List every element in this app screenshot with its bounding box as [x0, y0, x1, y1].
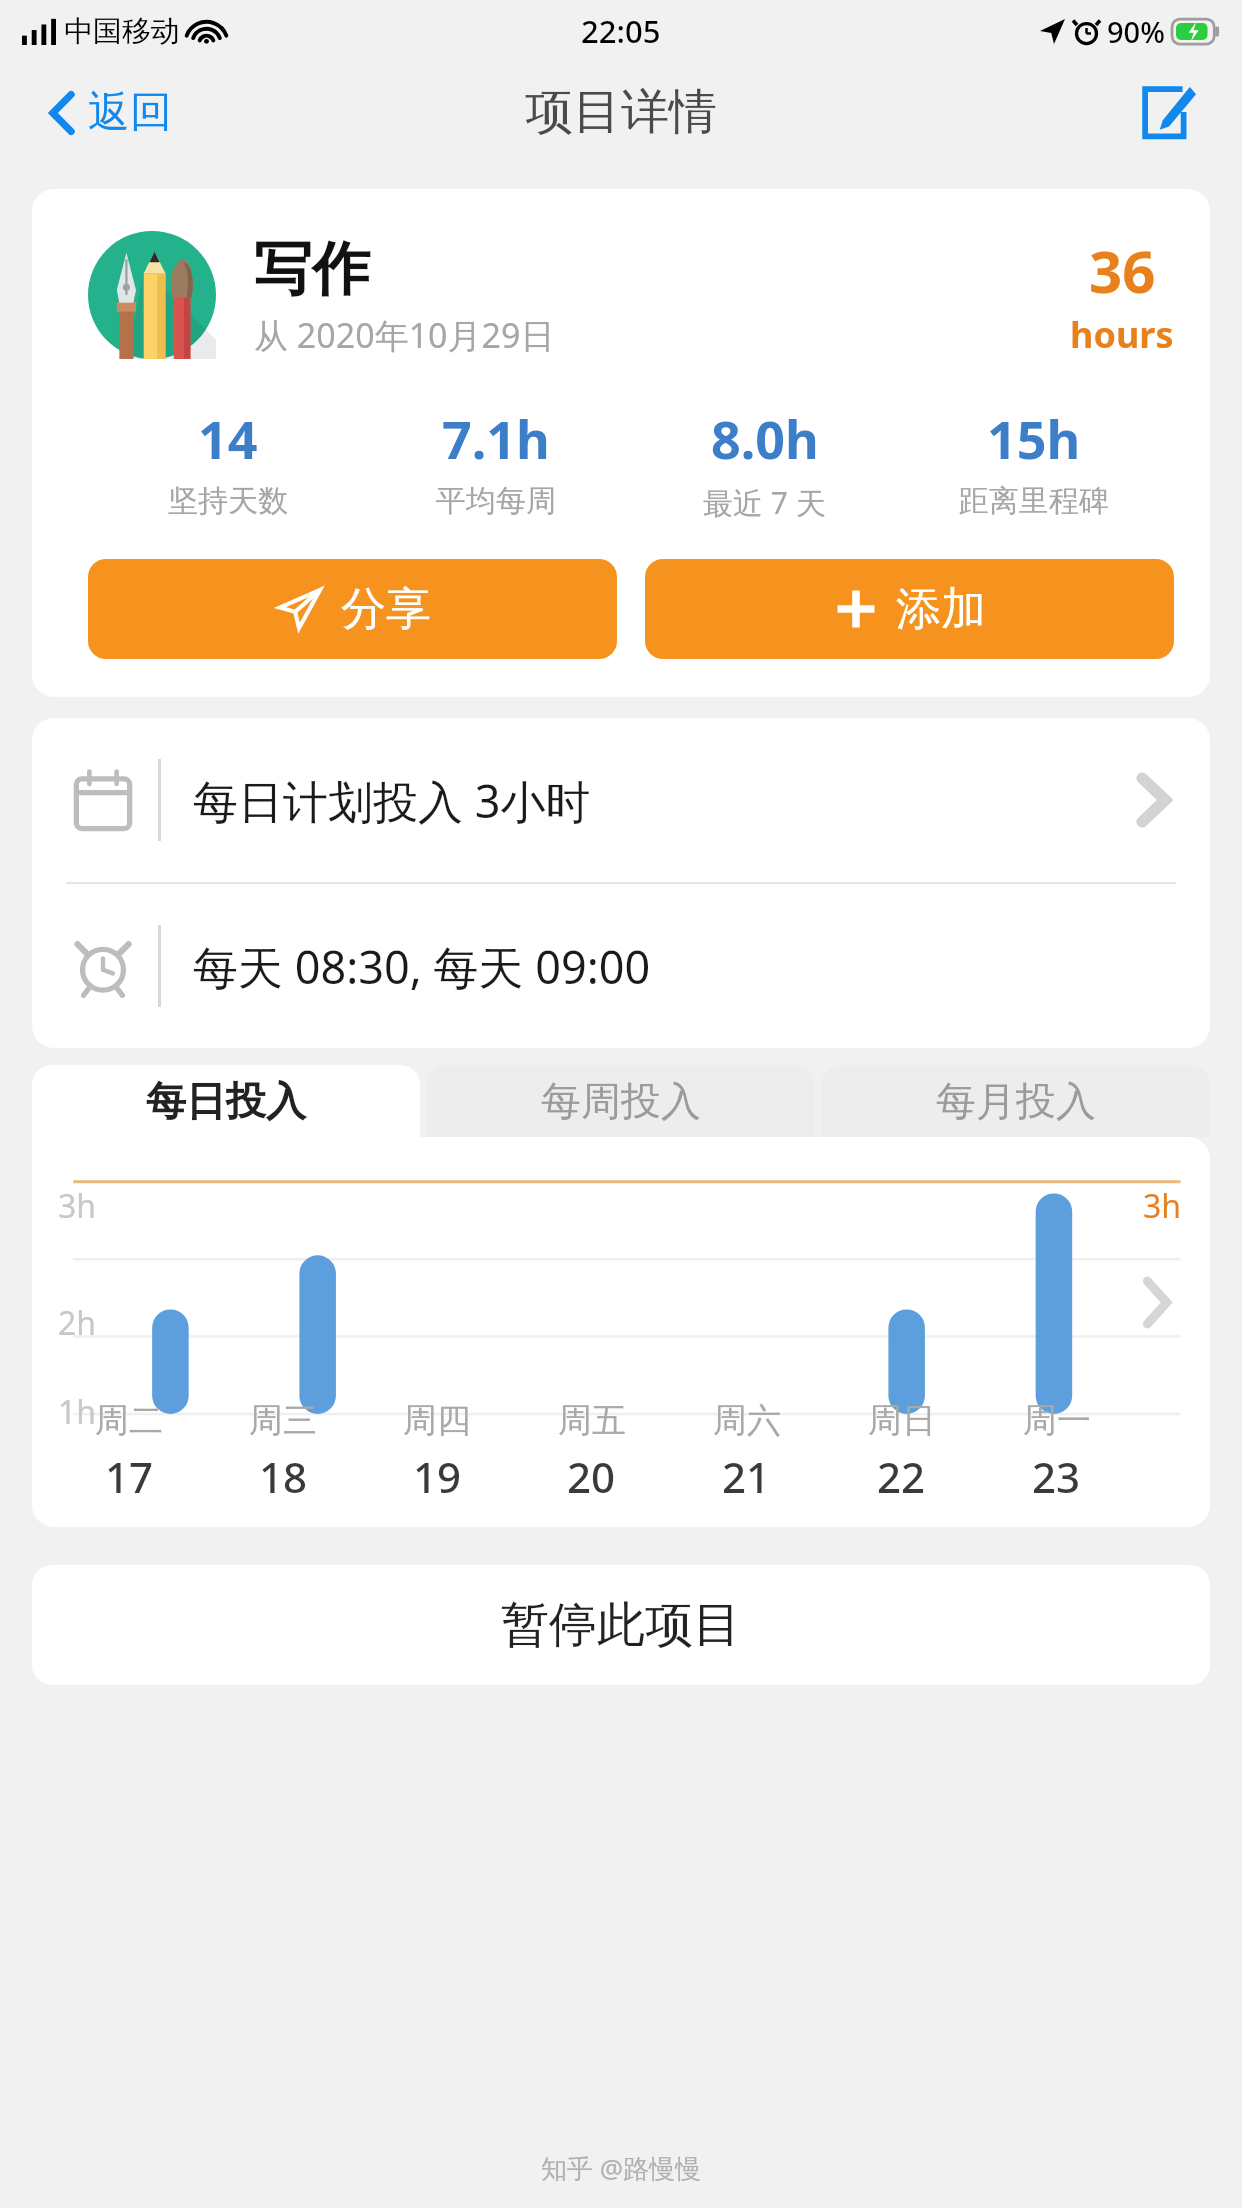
staticText: 7.1h	[442, 403, 550, 474]
button[interactable]: 添加	[645, 559, 1174, 659]
staticText: 距离里程碑	[959, 482, 1109, 520]
staticText: 周一	[1023, 1399, 1091, 1442]
button[interactable]: 每月投入	[821, 1065, 1210, 1137]
staticText: 90%	[1107, 12, 1165, 51]
staticText: 20	[567, 1448, 616, 1505]
staticText: 暂停此项目	[501, 1595, 741, 1655]
staticText: 中国移动	[64, 13, 180, 50]
button[interactable]: 每周投入	[426, 1065, 815, 1137]
staticText: 项目详情	[525, 82, 717, 142]
button[interactable]: Edit	[1118, 74, 1242, 150]
staticText: 1h	[58, 1390, 97, 1434]
staticText: 周日	[868, 1399, 936, 1442]
staticText: 写作	[254, 233, 370, 306]
staticText: 周五	[558, 1399, 626, 1442]
button[interactable]: 每日投入	[32, 1065, 420, 1137]
staticText: 22:05	[581, 10, 661, 52]
staticText: 平均每周	[436, 482, 556, 520]
button[interactable]: 暂停此项目	[32, 1565, 1210, 1685]
staticText: 每日投入	[146, 1076, 306, 1126]
staticText: hours	[1070, 310, 1174, 359]
staticText: 3h	[1143, 1184, 1182, 1228]
staticText: 返回	[88, 86, 172, 139]
button[interactable]: 分享	[88, 559, 617, 659]
staticText: 周二	[95, 1399, 163, 1442]
staticText: 14	[198, 403, 258, 474]
staticText: 23	[1032, 1448, 1081, 1505]
staticText: 2h	[58, 1301, 97, 1345]
staticText: 36	[1089, 231, 1156, 310]
staticText: 每天 08:30, 每天 09:00	[193, 936, 1170, 997]
staticText: 从 2020年10月29日	[254, 312, 555, 358]
button[interactable]: 返回	[0, 72, 196, 153]
staticText: 21	[722, 1448, 771, 1505]
staticText: 分享	[341, 581, 431, 638]
staticText: 22	[877, 1448, 926, 1505]
staticText: 周六	[713, 1399, 781, 1442]
staticText: 添加	[896, 581, 986, 638]
button[interactable]: 每日计划投入 3小时	[32, 718, 1210, 882]
staticText: 周三	[249, 1399, 317, 1442]
staticText: 知乎 @路慢慢	[541, 2150, 702, 2186]
staticText: 最近 7 天	[703, 482, 826, 523]
staticText: 19	[413, 1448, 462, 1505]
staticText: 坚持天数	[168, 482, 288, 520]
staticText: 8.0h	[711, 403, 819, 474]
staticText: 每月投入	[936, 1076, 1096, 1126]
staticText: 18	[259, 1448, 308, 1505]
button[interactable]: 每天 08:30, 每天 09:00	[32, 884, 1210, 1048]
staticText: 17	[105, 1448, 154, 1505]
staticText: 15h	[987, 403, 1081, 474]
staticText: 每周投入	[541, 1076, 701, 1126]
staticText: 周四	[403, 1399, 471, 1442]
staticText: 3h	[58, 1184, 97, 1228]
staticText: 每日计划投入 3小时	[193, 770, 1136, 831]
